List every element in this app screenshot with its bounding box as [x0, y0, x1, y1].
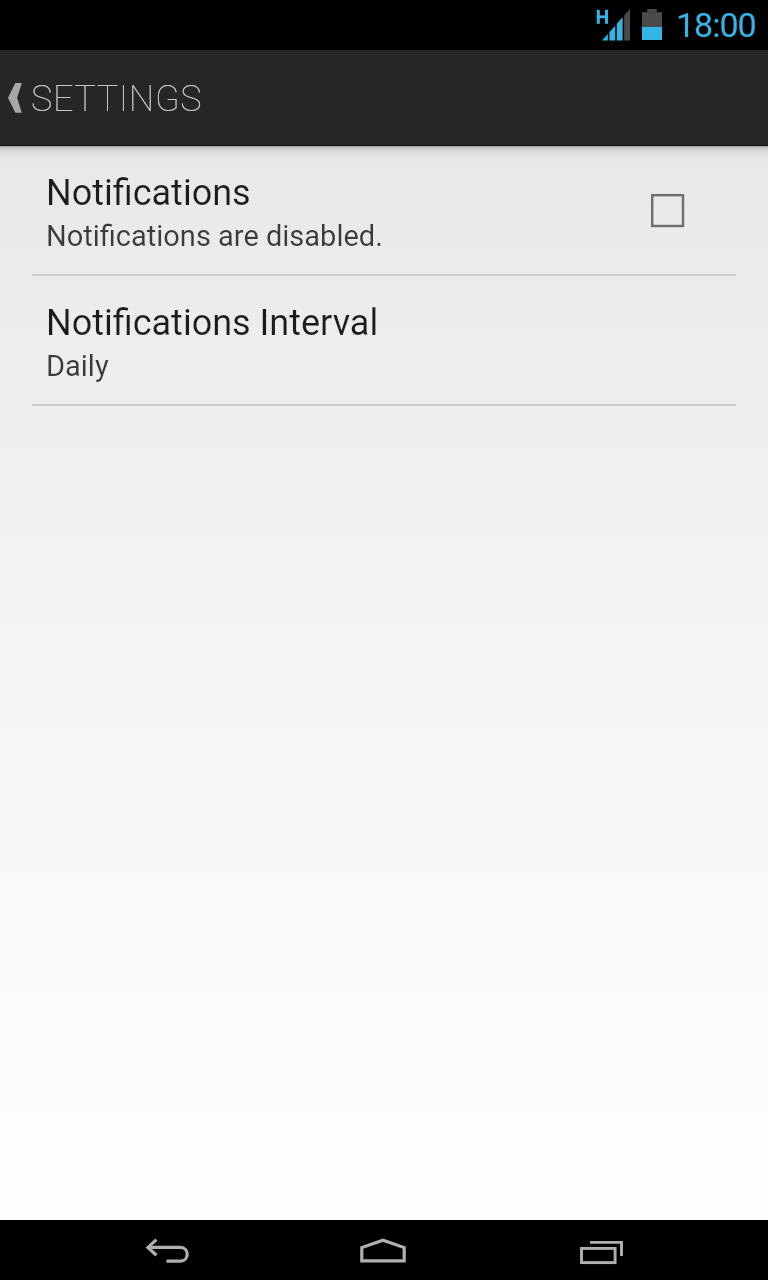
button[interactable]: Back: [147, 1239, 189, 1263]
button[interactable]: Notifications Interval: [0, 276, 768, 404]
button[interactable]: SETTINGS: [0, 51, 768, 147]
button[interactable]: Enable notifications: [650, 193, 684, 227]
staticText: Notifications Interval: [46, 302, 379, 344]
button[interactable]: Home: [360, 1238, 406, 1264]
staticText: Notifications: [46, 172, 251, 214]
staticText: Notifications are disabled.: [46, 219, 383, 253]
staticText: Daily: [46, 349, 109, 383]
staticText: SETTINGS: [31, 78, 203, 120]
button[interactable]: Recents: [580, 1240, 624, 1264]
button[interactable]: Notifications: [0, 146, 768, 274]
staticText: 18:00: [676, 5, 756, 45]
